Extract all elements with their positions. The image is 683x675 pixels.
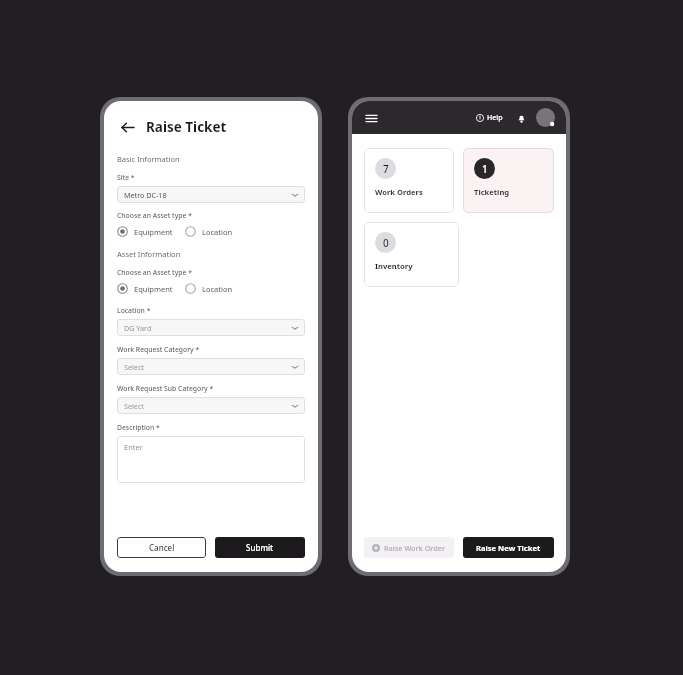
button[interactable]: Raise New Ticket [463, 537, 554, 558]
button[interactable]: Metro DC-18 [117, 186, 305, 203]
staticText: Location [202, 227, 233, 237]
staticText: Equipment [134, 284, 173, 294]
staticText: Enter [124, 442, 143, 452]
button[interactable]: DG Yard [117, 319, 305, 336]
staticText: Choose an Asset type * [117, 211, 192, 220]
staticText: Choose an Asset type * [117, 268, 192, 277]
staticText: Raise Work Order [384, 543, 446, 553]
button[interactable]: 1 [463, 148, 554, 213]
button[interactable]: Notifications [514, 111, 528, 125]
button[interactable]: Equipment [117, 281, 173, 296]
staticText: Inventory [375, 261, 413, 271]
staticText: Work Request Category * [117, 345, 200, 354]
staticText: Asset Information [117, 249, 181, 259]
staticText: Ticketing [474, 187, 510, 197]
staticText: Submit [246, 542, 274, 553]
button[interactable]: Select [117, 358, 305, 375]
staticText: Raise Ticket [146, 118, 227, 136]
staticText: Equipment [134, 227, 173, 237]
button[interactable]: Enter [117, 436, 305, 483]
staticText: Basic Information [117, 154, 180, 164]
button[interactable]: 0 [364, 222, 459, 287]
button[interactable]: Location [185, 224, 233, 239]
staticText: Work Orders [375, 187, 423, 197]
staticText: Location * [117, 306, 151, 315]
button[interactable]: Cancel [117, 537, 206, 558]
button[interactable]: Select [117, 397, 305, 414]
staticText: Cancel [149, 542, 175, 553]
button[interactable]: Raise Work Order [364, 537, 454, 558]
staticText: Work Request Sub Category * [117, 384, 214, 393]
staticText: Site * [117, 173, 135, 182]
button[interactable]: Location [185, 281, 233, 296]
staticText: 0 [383, 236, 389, 250]
staticText: Location [202, 284, 233, 294]
staticText: 1 [482, 162, 488, 176]
staticText: Select [124, 362, 144, 372]
staticText: Select [124, 401, 144, 411]
button[interactable]: Equipment [117, 224, 173, 239]
staticText: Help [487, 113, 503, 123]
staticText: 7 [383, 162, 389, 176]
button[interactable]: 7 [364, 148, 454, 213]
button[interactable]: Help [474, 110, 505, 126]
staticText: DG Yard [124, 323, 152, 333]
button[interactable]: Profile [536, 108, 555, 127]
staticText: Metro DC-18 [124, 190, 167, 200]
button[interactable]: Back [117, 117, 137, 137]
button[interactable]: Submit [215, 537, 305, 558]
staticText: Raise New Ticket [476, 543, 541, 553]
button[interactable]: Menu [363, 110, 379, 126]
staticText: Description * [117, 423, 160, 432]
